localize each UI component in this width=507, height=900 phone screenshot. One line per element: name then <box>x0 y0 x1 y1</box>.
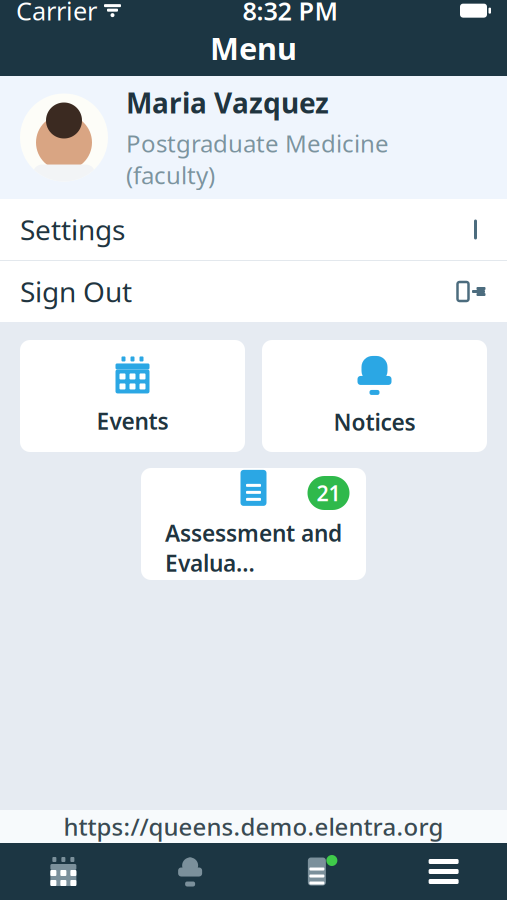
staticText: Notices <box>333 407 415 437</box>
button[interactable]: Events <box>0 843 127 900</box>
staticText: Carrier <box>16 0 97 27</box>
staticText: Postgraduate Medicine (faculty) <box>126 127 389 191</box>
staticText: 21 <box>316 479 340 507</box>
button[interactable]: Menu <box>380 843 507 900</box>
button[interactable]: Events <box>20 340 245 452</box>
staticText: Maria Vazquez <box>126 84 329 121</box>
staticText: Menu <box>210 28 297 68</box>
button[interactable]: Sign Out <box>0 261 507 322</box>
staticText: 8:32 PM <box>242 0 338 27</box>
staticText: Sign Out <box>20 273 132 310</box>
button[interactable]: Assessments <box>253 843 380 900</box>
button[interactable]: Notices <box>262 340 487 452</box>
staticText: Settings <box>20 211 125 248</box>
staticText: https://queens.demo.elentra.org <box>63 811 443 842</box>
button[interactable]: Settings <box>0 199 507 260</box>
button[interactable]: Notices <box>127 843 254 900</box>
button[interactable]: Assessment and Evalua… <box>141 468 366 580</box>
staticText: Assessment and Evalua… <box>165 518 342 578</box>
staticText: Events <box>96 406 168 436</box>
